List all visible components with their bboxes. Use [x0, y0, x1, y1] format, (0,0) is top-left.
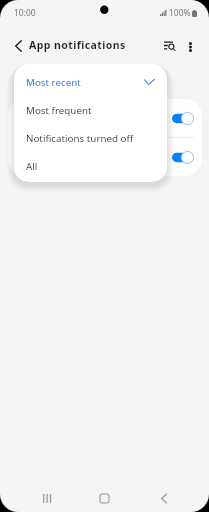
- button[interactable]: Back: [144, 481, 184, 512]
- staticText: All: [26, 160, 38, 173]
- button[interactable]: Most recent: [14, 68, 167, 96]
- button[interactable]: [8, 138, 202, 176]
- staticText: Notifications turned off: [26, 132, 134, 145]
- button[interactable]: Notifications turned off: [14, 124, 167, 152]
- button[interactable]: Recent apps: [26, 481, 66, 512]
- button[interactable]: Most frequent: [14, 96, 167, 124]
- button[interactable]: [8, 99, 202, 137]
- button[interactable]: Navigate up: [7, 34, 28, 55]
- button[interactable]: Search: [154, 33, 176, 55]
- button[interactable]: All: [14, 152, 167, 180]
- staticText: 100%: [169, 7, 191, 19]
- staticText: Most recent: [26, 76, 81, 89]
- staticText: App notifications: [29, 38, 126, 52]
- button[interactable]: Home: [84, 481, 124, 512]
- staticText: Most frequent: [26, 104, 92, 117]
- button[interactable]: More options: [178, 33, 200, 55]
- staticText: 10:00: [14, 7, 36, 19]
